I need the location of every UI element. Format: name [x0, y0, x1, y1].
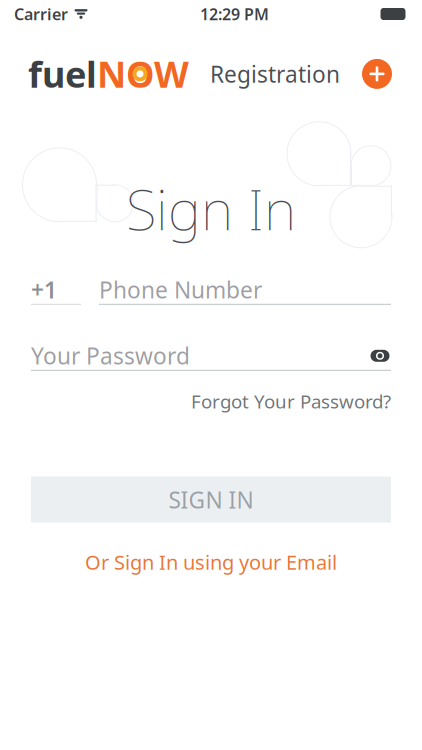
staticText: O: [126, 50, 154, 98]
staticText: Registration: [210, 59, 340, 89]
staticText: fuel: [28, 50, 97, 98]
staticText: SIGN IN: [168, 484, 253, 515]
staticText: W: [154, 50, 189, 98]
staticText: Phone Number: [99, 275, 262, 305]
button[interactable]: Show password: [369, 348, 391, 364]
staticText: Forgot Your Password?: [191, 389, 391, 414]
staticText: Your Password: [31, 341, 190, 371]
staticText: Sign In: [126, 171, 296, 246]
button[interactable]: SIGN IN: [31, 477, 391, 523]
staticText: 12:29 PM: [200, 3, 269, 25]
button[interactable]: Registration: [210, 59, 340, 89]
staticText: Carrier: [14, 3, 68, 25]
button[interactable]: Register: [360, 57, 394, 91]
staticText: Or Sign In using your Email: [85, 549, 337, 575]
button[interactable]: Or Sign In using your Email: [31, 549, 391, 575]
staticText: N: [97, 50, 126, 98]
staticText: +1: [31, 275, 57, 305]
button[interactable]: Forgot Your Password?: [191, 389, 391, 414]
